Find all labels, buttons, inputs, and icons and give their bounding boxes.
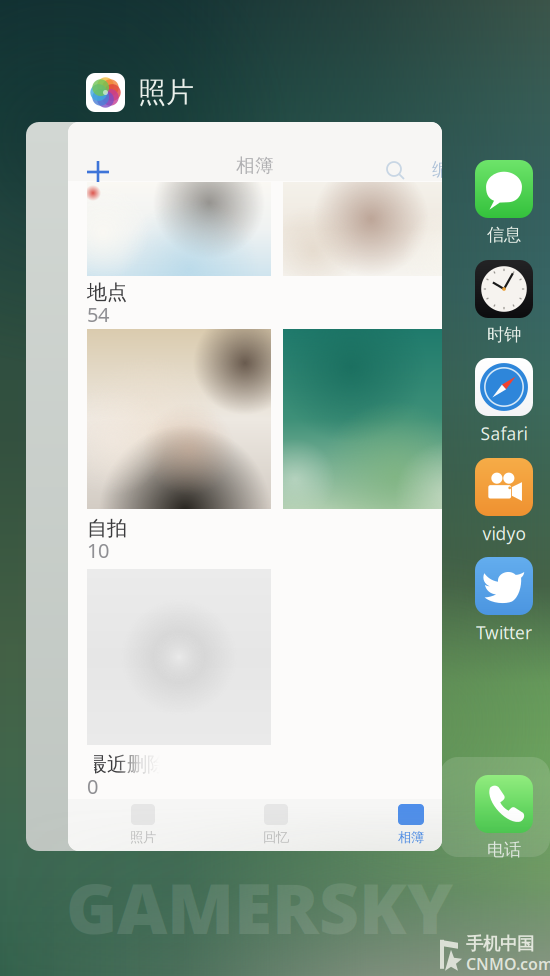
button[interactable]: 时钟 xyxy=(449,260,550,345)
button[interactable]: 编辑 xyxy=(426,152,476,187)
staticText: Twitter xyxy=(476,621,532,644)
staticText: 10 xyxy=(87,537,109,564)
button[interactable]: Search xyxy=(377,152,415,190)
staticText: 自拍 xyxy=(87,516,127,541)
button[interactable]: 照片 xyxy=(86,73,194,112)
button[interactable]: vidyo xyxy=(449,458,550,545)
staticText: CNMO.com xyxy=(466,953,550,974)
button[interactable]: Twitter xyxy=(449,557,550,644)
staticText: 照片 xyxy=(130,829,156,845)
staticText: 地点 xyxy=(87,280,127,305)
button[interactable]: 电话 xyxy=(449,775,550,860)
staticText: 54 xyxy=(87,301,109,328)
staticText: 照片 xyxy=(138,75,194,110)
button[interactable]: New Album xyxy=(77,151,119,193)
button[interactable]: 回忆 xyxy=(240,804,312,845)
staticText: 手机中国 xyxy=(466,933,534,954)
staticText: 相簿 xyxy=(398,829,424,845)
button[interactable]: 信息 xyxy=(449,160,550,245)
staticText: 最近删除 xyxy=(87,752,167,777)
staticText: 信息 xyxy=(487,224,521,245)
button[interactable]: 相簿 xyxy=(375,804,447,845)
staticText: 0 xyxy=(87,773,98,800)
staticText: 回忆 xyxy=(263,829,289,845)
button[interactable]: 照片 xyxy=(107,804,179,845)
button[interactable]: Safari xyxy=(449,358,550,445)
staticText: vidyo xyxy=(482,522,525,545)
staticText: GAMERSKY xyxy=(66,861,453,953)
staticText: 电话 xyxy=(487,839,521,860)
staticText: 编辑 xyxy=(432,158,470,181)
staticText: 时钟 xyxy=(487,324,521,345)
staticText: Safari xyxy=(480,422,527,445)
staticText: 相簿 xyxy=(236,154,274,177)
